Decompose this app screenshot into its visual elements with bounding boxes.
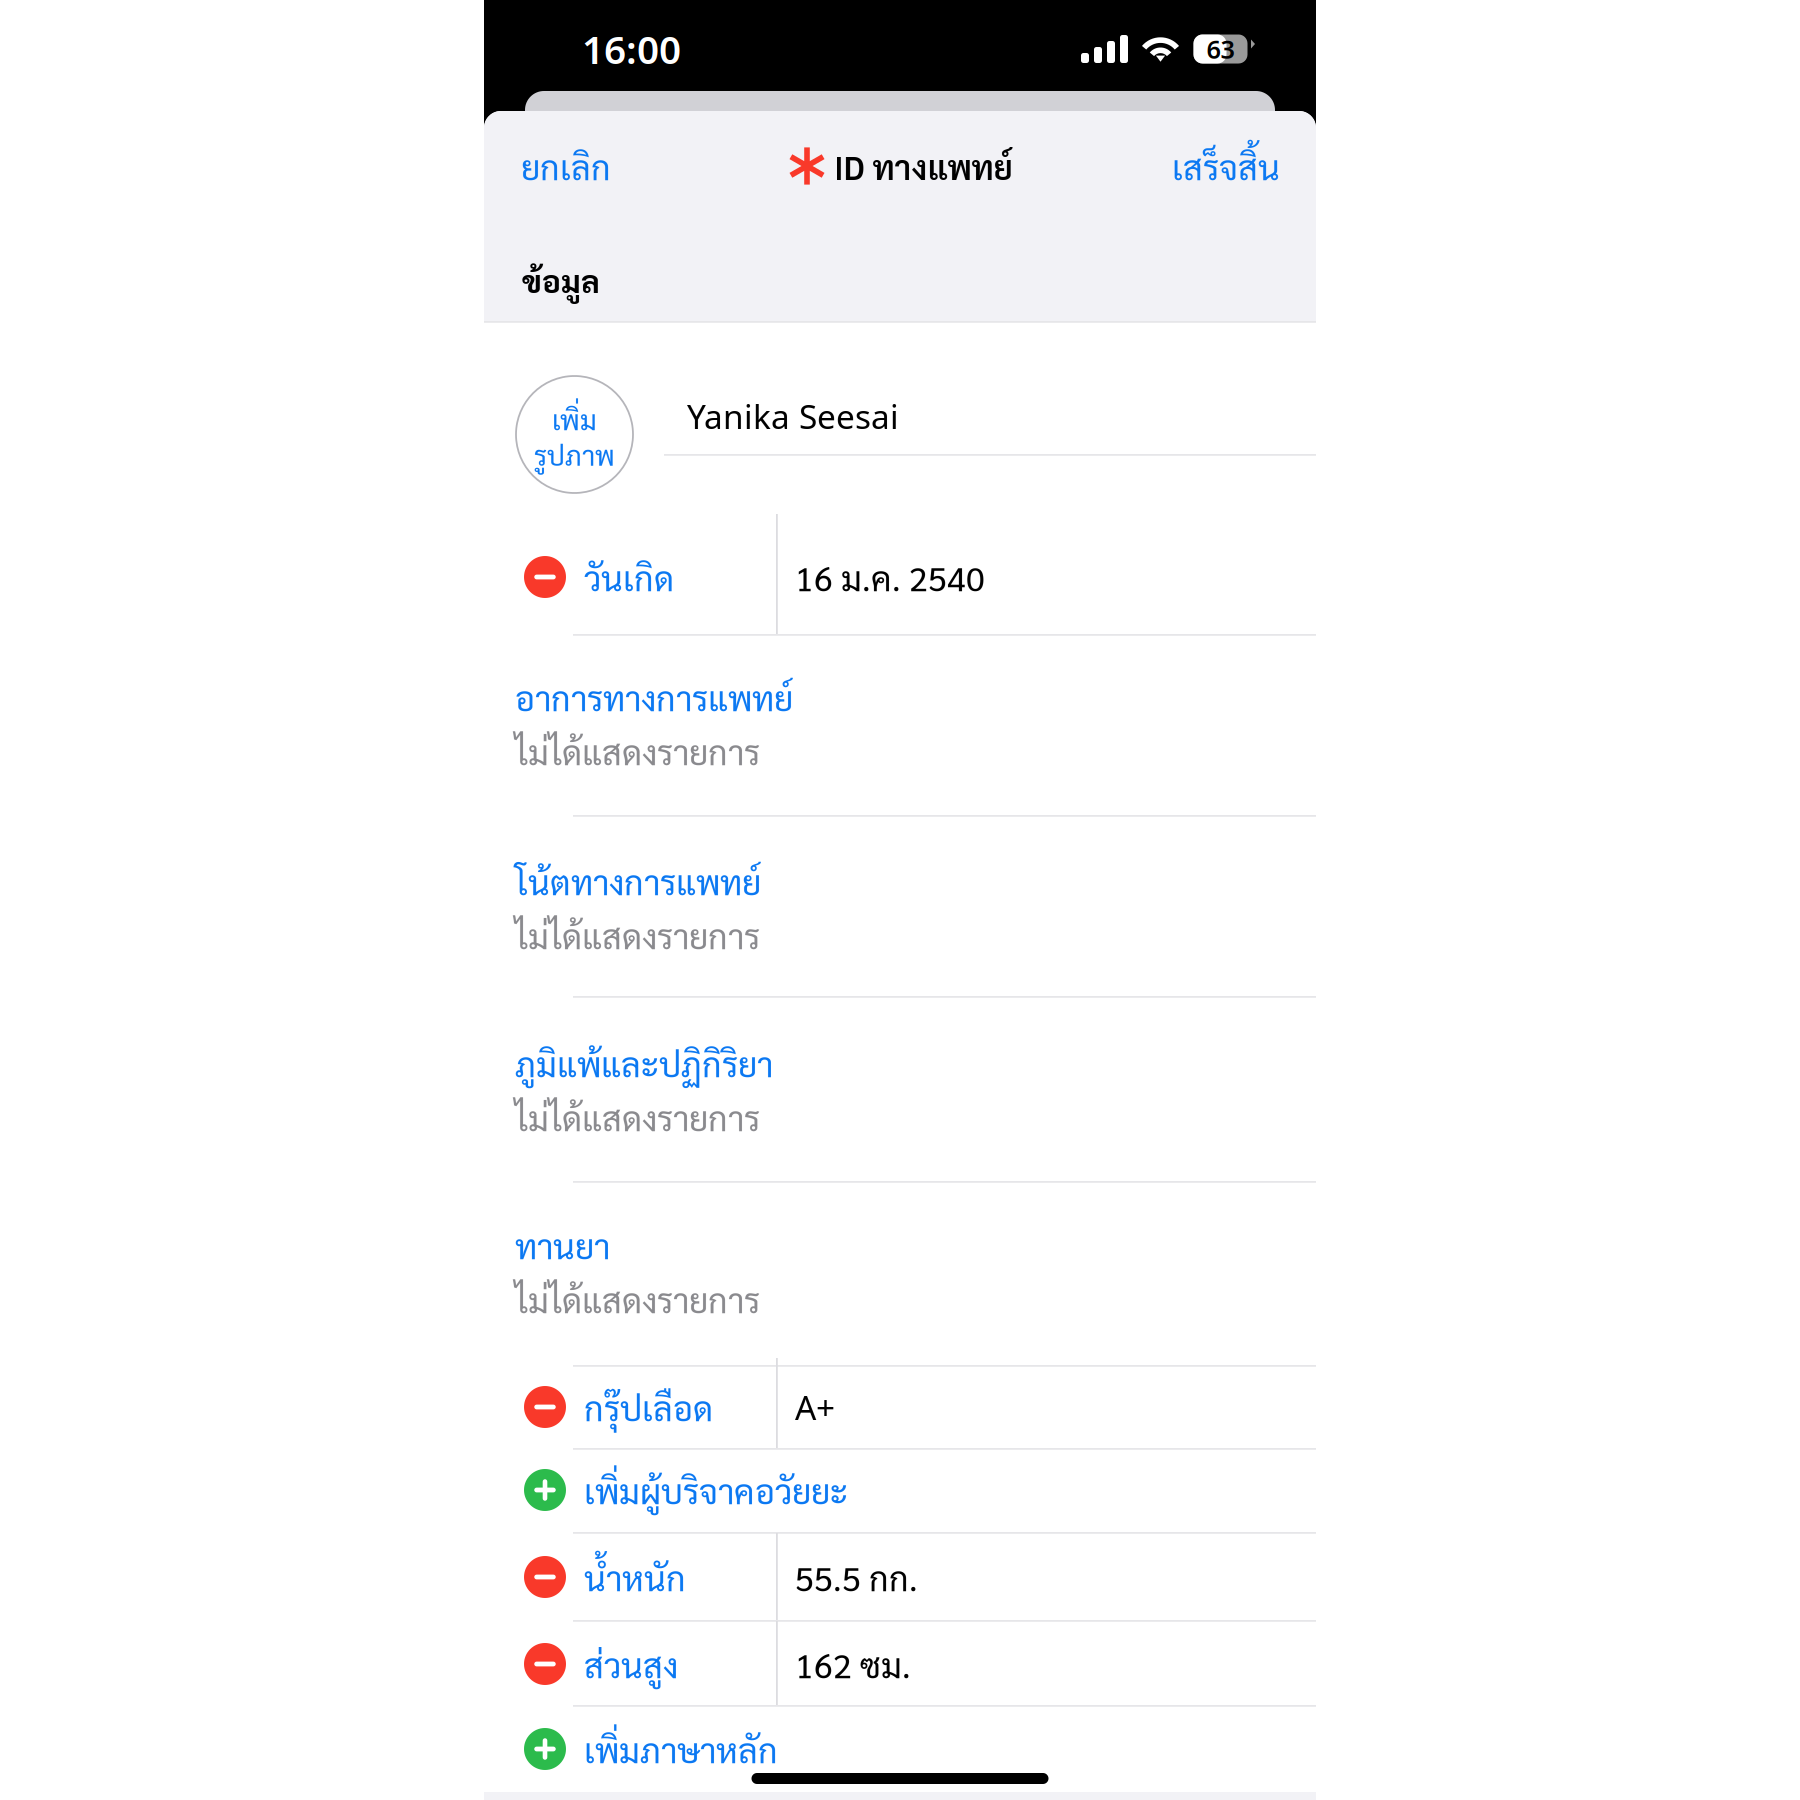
staticText: โน้ตทางการแพทย์ (515, 859, 761, 903)
staticText: ไม่ได้แสดงรายการ (515, 729, 760, 773)
button[interactable]: ทานยา (484, 111, 1316, 293)
staticText: ID ทางแพทย์ (833, 144, 1012, 188)
staticText: 162 ซม. (795, 1642, 911, 1686)
staticText: ส่วนสูง (584, 1642, 678, 1686)
staticText: รูปภาพ (534, 436, 615, 472)
staticText: Yanika Seesai (687, 394, 899, 438)
staticText: เพิ่มภาษาหลัก (584, 1727, 778, 1771)
staticText: วันเกิด (584, 555, 674, 599)
button[interactable]: โน้ตทางการแพทย์ (484, 111, 1316, 290)
staticText: ไม่ได้แสดงรายการ (515, 1277, 760, 1321)
staticText: 63 (1206, 32, 1234, 66)
staticText: น้ำหนัก (584, 1555, 686, 1599)
button[interactable]: ส่วนสูง (484, 111, 1316, 194)
staticText: ทานยา (515, 1223, 610, 1267)
staticText: A+ (795, 1385, 835, 1429)
staticText: ไม่ได้แสดงรายการ (515, 1095, 760, 1139)
button[interactable]: เสร็จสิ้น (484, 111, 684, 175)
staticText: เสร็จสิ้น (1172, 144, 1280, 188)
button[interactable]: วันเกิด (484, 111, 1316, 231)
button[interactable]: Yanika Seesai (484, 111, 1113, 189)
staticText: ยกเลิก (521, 144, 611, 188)
staticText: ภูมิแพ้และปฏิกิริยา (515, 1041, 773, 1085)
button[interactable]: อาการทางการแพทย์ (484, 111, 1316, 290)
staticText: 16 ม.ค. 2540 (795, 555, 985, 599)
button[interactable]: เพิ่มภาษาหลัก (484, 111, 1316, 196)
staticText: อาการทางการแพทย์ (515, 675, 793, 719)
staticText: ไม่ได้แสดงรายการ (515, 913, 760, 957)
staticText: 16:00 (582, 23, 681, 75)
button[interactable]: ภูมิแพ้และปฏิกิริยา (484, 111, 1316, 294)
staticText: 55.5 กก. (795, 1555, 918, 1599)
button[interactable]: เพิ่มรูปภาพ (484, 111, 601, 228)
staticText: ข้อมูล (522, 260, 600, 300)
button[interactable]: เพิ่มผู้บริจาคอวัยยะ (484, 111, 1316, 193)
staticText: กรุ๊ปเลือด (584, 1385, 713, 1429)
button[interactable]: กรุ๊ปเลือด (484, 111, 1316, 192)
button[interactable]: น้ำหนัก (484, 111, 1316, 197)
staticText: เพิ่ม (552, 401, 597, 436)
button[interactable]: ยกเลิก (484, 111, 634, 175)
staticText: เพิ่มผู้บริจาคอวัยยะ (584, 1468, 848, 1512)
